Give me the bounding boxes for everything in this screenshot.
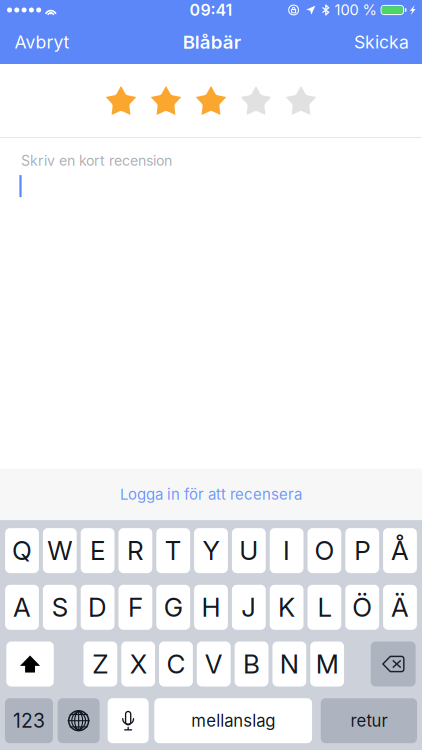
staticText: I [283, 535, 290, 566]
button[interactable]: retur [321, 698, 417, 743]
button[interactable]: 4 stars [241, 86, 271, 115]
button[interactable]: Delete [371, 641, 416, 686]
button[interactable]: V [197, 641, 231, 686]
button[interactable]: P [345, 528, 379, 573]
button[interactable]: M [310, 641, 344, 686]
button[interactable]: R [118, 528, 152, 573]
button[interactable]: 2 stars [151, 86, 181, 115]
button[interactable]: A [5, 585, 39, 630]
button[interactable]: 1 star [106, 86, 136, 115]
staticText: L [317, 592, 331, 623]
staticText: K [278, 592, 295, 623]
button[interactable]: L [307, 585, 341, 630]
staticText: Ö [352, 592, 372, 623]
button[interactable]: mellanslag [154, 698, 312, 743]
button[interactable]: O [307, 528, 341, 573]
staticText: V [205, 648, 223, 680]
staticText: U [239, 535, 258, 566]
button[interactable]: I [270, 528, 303, 573]
staticText: Ä [391, 592, 409, 623]
staticText: 123 [13, 709, 45, 732]
button[interactable]: X [121, 641, 155, 686]
button[interactable]: Z [83, 641, 117, 686]
staticText: E [90, 535, 105, 566]
staticText: Skriv en kort recension [21, 152, 172, 169]
staticText: P [354, 535, 370, 566]
button[interactable]: S [43, 585, 77, 630]
button[interactable]: Next keyboard [58, 698, 100, 743]
staticText: C [166, 648, 185, 680]
staticText: B [243, 648, 260, 680]
button[interactable]: Shift [6, 641, 54, 686]
button[interactable]: G [156, 585, 190, 630]
button[interactable]: Y [194, 528, 228, 573]
staticText: D [88, 592, 107, 623]
staticText: F [128, 592, 143, 623]
button[interactable]: B [235, 641, 268, 686]
staticText: mellanslag [191, 711, 275, 731]
button[interactable]: 123 [5, 698, 53, 743]
staticText: Logga in för att recensera [120, 485, 302, 503]
staticText: Å [391, 535, 409, 566]
staticText: W [47, 535, 72, 566]
staticText: T [165, 535, 182, 566]
button[interactable]: Q [5, 528, 39, 573]
staticText: O [314, 535, 334, 566]
staticText: H [201, 592, 220, 623]
button[interactable]: Skicka [344, 20, 422, 64]
button[interactable]: Dictation [108, 698, 149, 743]
button[interactable]: N [272, 641, 306, 686]
button[interactable]: U [232, 528, 266, 573]
staticText: Blåbär [183, 31, 241, 53]
staticText: X [130, 648, 147, 680]
button[interactable]: C [159, 641, 193, 686]
button[interactable]: J [232, 585, 266, 630]
staticText: S [52, 592, 68, 623]
button[interactable]: Ä [383, 585, 417, 630]
button[interactable]: Ö [345, 585, 379, 630]
button[interactable]: T [156, 528, 190, 573]
button[interactable]: Å [383, 528, 417, 573]
button[interactable]: Avbryt [0, 20, 79, 64]
staticText: Z [92, 648, 108, 680]
button[interactable]: H [194, 585, 228, 630]
button[interactable]: Logga in för att recensera [0, 469, 422, 520]
staticText: M [316, 648, 339, 680]
staticText: J [241, 592, 256, 623]
staticText: retur [350, 711, 387, 731]
staticText: Avbryt [14, 31, 69, 53]
staticText: A [13, 592, 31, 623]
staticText: 09:41 [189, 0, 232, 20]
button[interactable]: W [43, 528, 77, 573]
staticText: Skicka [354, 31, 409, 53]
staticText: G [164, 592, 183, 623]
button[interactable]: F [118, 585, 152, 630]
staticText: R [127, 535, 144, 566]
staticText: Y [202, 535, 219, 566]
button[interactable]: 3 stars [196, 86, 226, 115]
staticText: 100 % [335, 1, 377, 19]
button[interactable]: E [81, 528, 114, 573]
button[interactable]: 5 stars [286, 86, 316, 115]
staticText: Q [12, 535, 32, 566]
staticText: N [280, 648, 299, 680]
button[interactable]: K [270, 585, 303, 630]
button[interactable]: D [81, 585, 114, 630]
